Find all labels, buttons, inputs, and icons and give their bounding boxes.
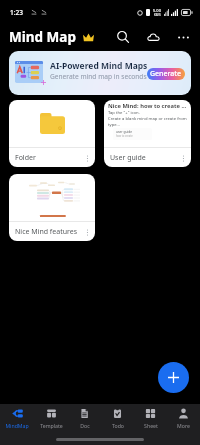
staticText: AI-Powered Mind Maps — [50, 60, 148, 72]
button[interactable]: AI-Powered Mind Maps — [9, 51, 191, 95]
button[interactable]: Doc — [68, 404, 101, 433]
button[interactable]: Generate — [147, 68, 185, 80]
staticText: Generate mind map in seconds — [50, 72, 147, 81]
staticText: Generate — [150, 69, 182, 79]
staticText: User guide — [110, 153, 146, 163]
button[interactable]: More for Nice Mind features — [82, 227, 92, 237]
staticText: Doc — [80, 422, 90, 429]
button[interactable]: More options — [168, 24, 198, 50]
staticText: Sheet — [144, 422, 158, 429]
staticText: KB/S — [154, 13, 161, 17]
staticText: Template — [40, 422, 63, 429]
button[interactable]: Search — [108, 24, 138, 50]
button[interactable]: Template — [34, 404, 68, 433]
staticText: Todo — [112, 422, 124, 429]
button[interactable]: More — [167, 404, 200, 433]
button[interactable]: Cloud sync — [138, 24, 168, 50]
button[interactable]: Nice Mind: how to create ... — [104, 100, 191, 167]
staticText: Tap the "+" icon. — [108, 110, 140, 116]
staticText: MindMap — [5, 422, 29, 429]
staticText: Mind Map — [9, 28, 76, 46]
button[interactable]: MindMap — [0, 404, 34, 433]
button[interactable]: Sheet — [134, 404, 167, 433]
button[interactable]: Todo — [101, 404, 134, 433]
button[interactable]: Create new — [158, 362, 189, 393]
staticText: Folder — [15, 153, 36, 163]
staticText: 5.00 — [153, 8, 161, 13]
staticText: type... — [108, 122, 120, 128]
staticText: More — [177, 422, 190, 429]
staticText: how to create — [116, 134, 133, 138]
staticText: 1:23 — [10, 8, 23, 17]
button[interactable]: More for Folder — [82, 153, 92, 163]
staticText: Nice Mind features — [15, 227, 78, 237]
staticText: Nice Mind: how to create ... — [108, 102, 187, 110]
button[interactable]: Nice Mind features — [9, 174, 95, 241]
staticText: user guide — [116, 130, 132, 134]
staticText: Create a blank mind map or create from — [108, 116, 187, 122]
button[interactable]: More for User guide — [178, 153, 188, 163]
button[interactable]: Folder — [9, 100, 95, 167]
